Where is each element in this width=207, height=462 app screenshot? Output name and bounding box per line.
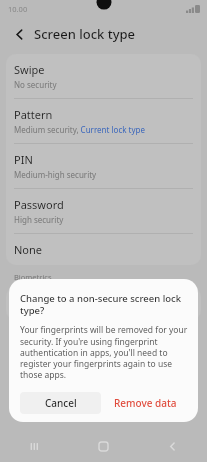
- staticText: High security: [14, 214, 64, 225]
- staticText: Biometrics: [14, 272, 52, 282]
- staticText: Cancel: [45, 396, 77, 410]
- staticText: Screen lock type: [34, 25, 136, 43]
- staticText: Swipe: [14, 62, 45, 77]
- button[interactable]: Face: [6, 287, 201, 320]
- staticText: Change to a non-secure screen lock type?: [20, 292, 189, 317]
- button[interactable]: Back: [9, 24, 29, 44]
- button[interactable]: Recents: [0, 431, 69, 462]
- staticText: None: [14, 242, 43, 257]
- button[interactable]: Remove data: [101, 392, 189, 414]
- staticText: 10.00: [8, 4, 28, 14]
- button[interactable]: Pattern: [6, 99, 201, 144]
- staticText: Remove data: [114, 396, 177, 410]
- button[interactable]: Password: [6, 189, 201, 234]
- button[interactable]: PIN: [6, 144, 201, 189]
- staticText: Medium-high security: [14, 169, 97, 180]
- button[interactable]: None: [6, 234, 201, 265]
- staticText: Face: [14, 296, 38, 311]
- staticText: Password: [14, 197, 64, 212]
- button[interactable]: Cancel: [20, 392, 101, 414]
- button[interactable]: Home: [69, 431, 138, 462]
- staticText: Your fingerprints will be removed for yo…: [20, 324, 189, 381]
- staticText: PIN: [14, 152, 33, 167]
- button[interactable]: Swipe: [6, 54, 201, 99]
- staticText: Medium security, Current lock type: [14, 124, 145, 135]
- staticText: No security: [14, 79, 57, 90]
- staticText: Pattern: [14, 107, 53, 122]
